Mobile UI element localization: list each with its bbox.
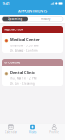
staticText: APPOINTMENTS [18, 8, 47, 14]
staticText: Dr. Lin · Cleaning [10, 82, 35, 85]
button[interactable]: Calendar [0, 123, 22, 140]
staticText: Tomorrow · 9:30 AM [10, 44, 38, 47]
staticText: Medical Center [10, 37, 40, 42]
staticText: History [41, 17, 50, 21]
button[interactable]: Profile [43, 123, 65, 140]
staticText: Thu, Mar 14 · 2 PM [10, 77, 36, 80]
staticText: Visits [29, 130, 36, 134]
button[interactable]: Visits [22, 123, 43, 140]
staticText: NEEDS ACTION [4, 28, 23, 31]
button[interactable]: UPCOMING [0, 59, 65, 86]
staticText: 9:41 [2, 1, 9, 6]
button[interactable]: NEEDS ACTION [0, 26, 65, 53]
button[interactable]: Upcoming [2, 16, 28, 21]
staticText: Dr. Alvarez · Confirm [10, 49, 37, 52]
staticText: Profile [49, 130, 59, 134]
staticText: Calendar [5, 130, 17, 134]
staticText: Upcoming [7, 17, 22, 21]
staticText: Dental Clinic [10, 70, 35, 75]
button[interactable]: History [28, 16, 63, 21]
staticText: UPCOMING [4, 61, 20, 64]
